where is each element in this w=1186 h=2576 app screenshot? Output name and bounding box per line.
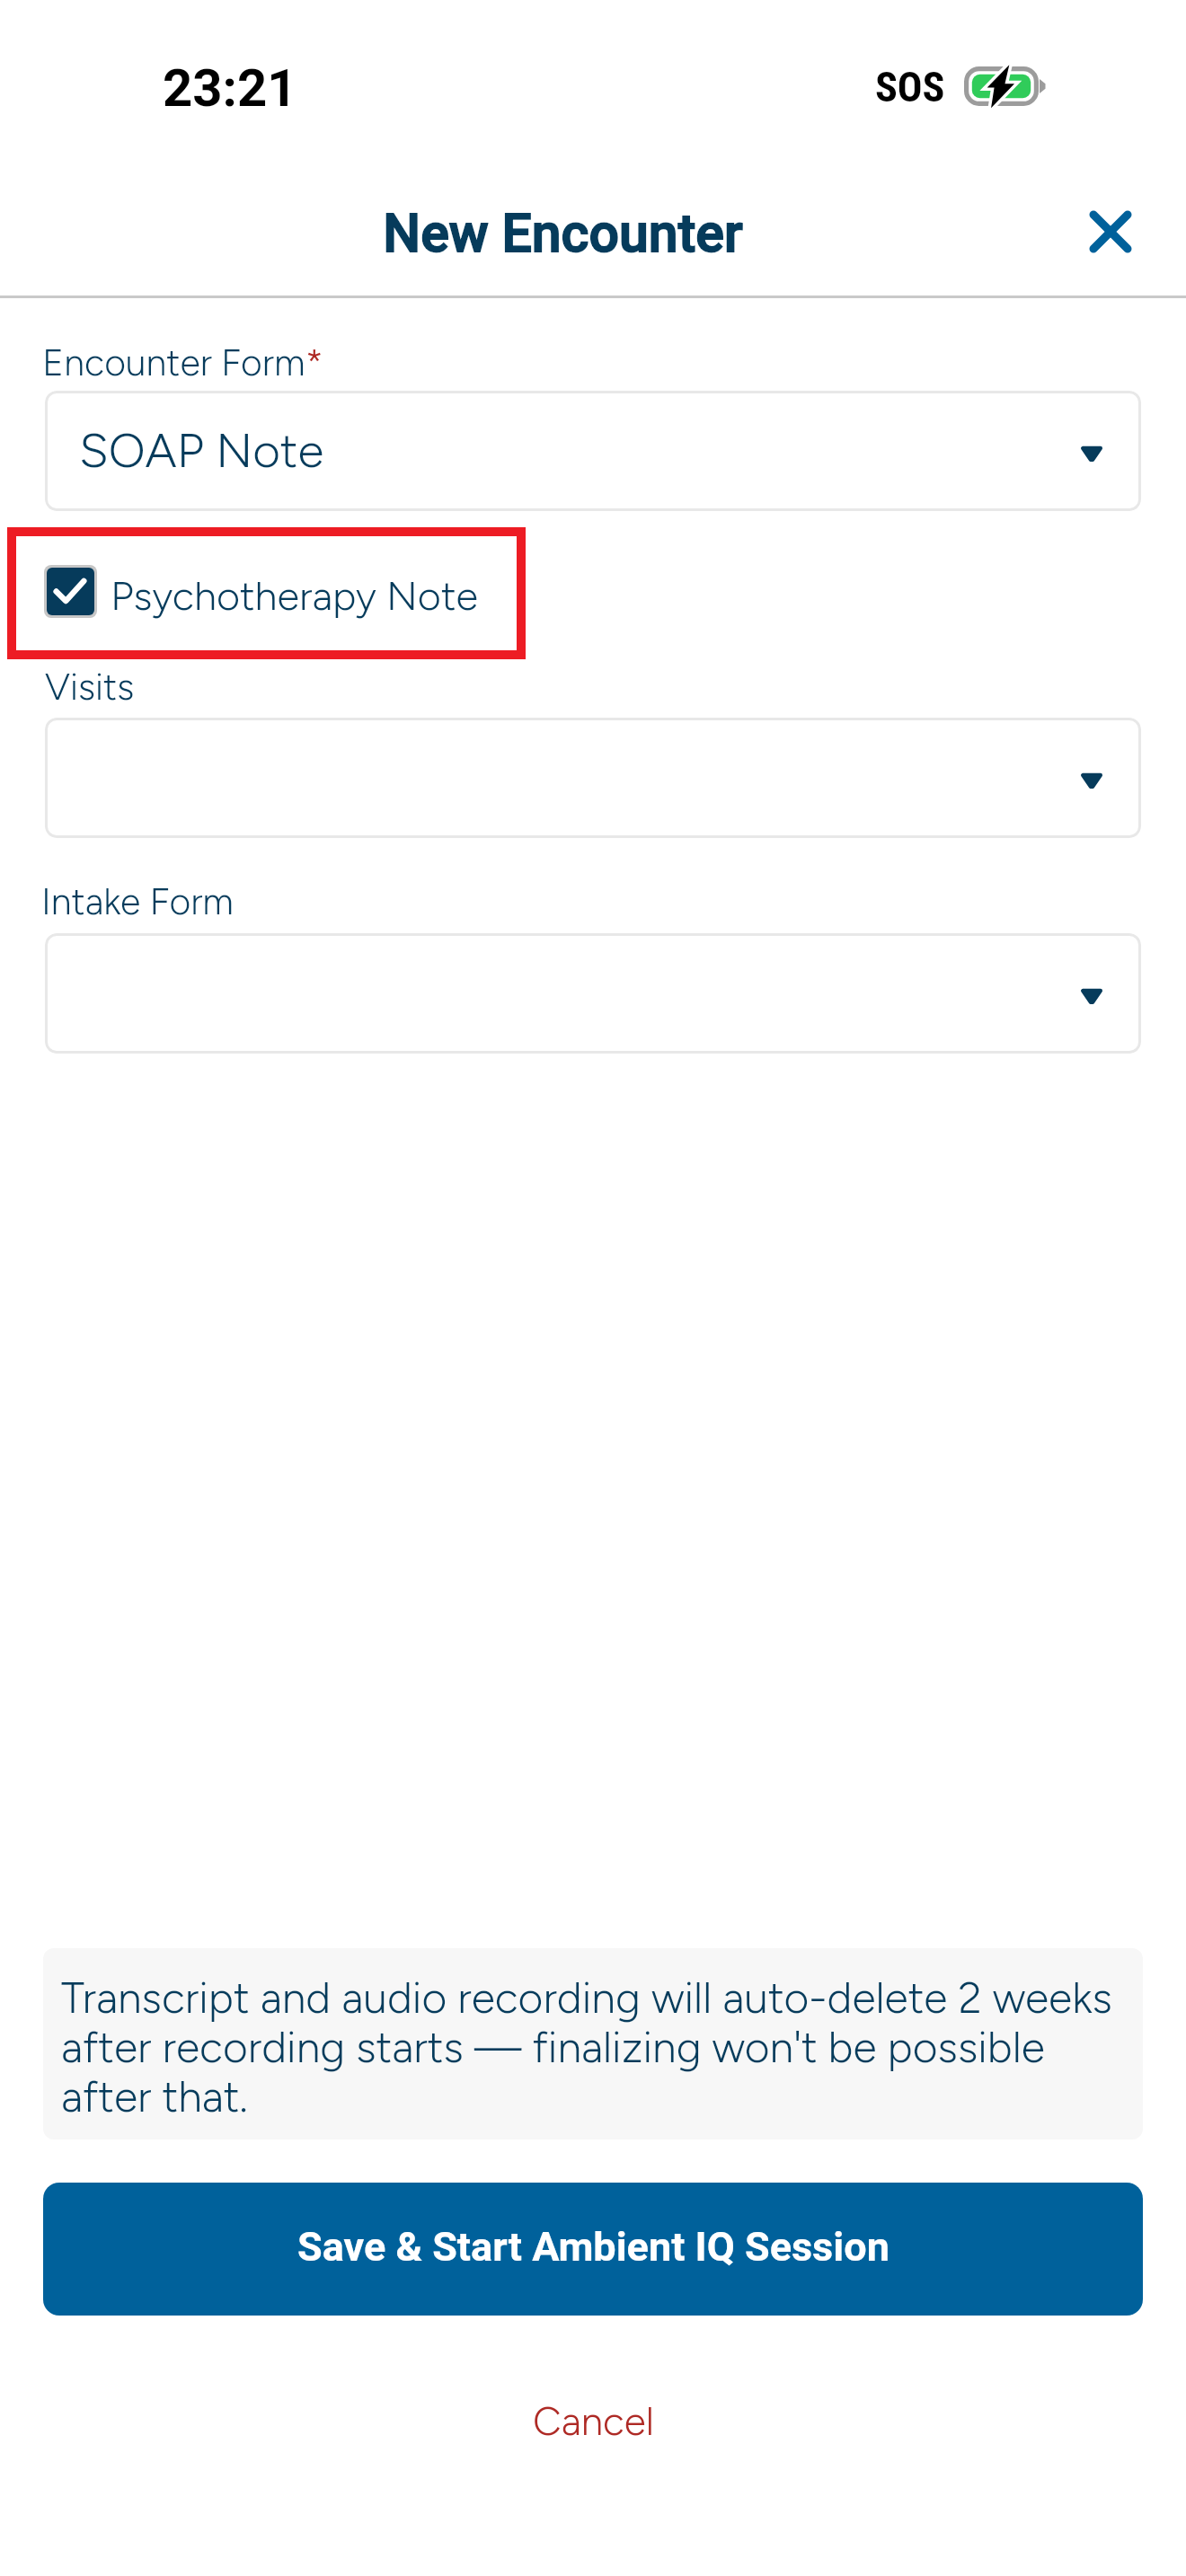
staticText: New Encounter: [0, 202, 1126, 264]
button[interactable]: Save & Start Ambient IQ Session: [43, 2183, 1143, 2316]
button[interactable]: Select visits: [45, 718, 1141, 838]
button[interactable]: Cancel: [43, 2353, 1143, 2488]
staticText: Psychotherapy Note: [111, 571, 478, 620]
staticText: *: [305, 340, 323, 384]
staticText: Encounter Form: [42, 340, 305, 384]
staticText: SOS: [875, 63, 945, 111]
button[interactable]: Close: [1066, 187, 1155, 277]
button[interactable]: SOAP Note: [45, 391, 1141, 511]
button[interactable]: Psychotherapy Note checkbox, checked: [44, 565, 478, 618]
staticText: Visits: [45, 665, 135, 709]
staticText: Save & Start Ambient IQ Session: [297, 2223, 889, 2271]
staticText: Cancel: [533, 2397, 654, 2445]
staticText: Intake Form: [41, 879, 234, 923]
staticText: SOAP Note: [79, 422, 324, 480]
button[interactable]: Select intake form: [45, 933, 1141, 1054]
staticText: 23:21: [163, 57, 297, 119]
staticText: Transcript and audio recording will auto…: [61, 1972, 1143, 2122]
